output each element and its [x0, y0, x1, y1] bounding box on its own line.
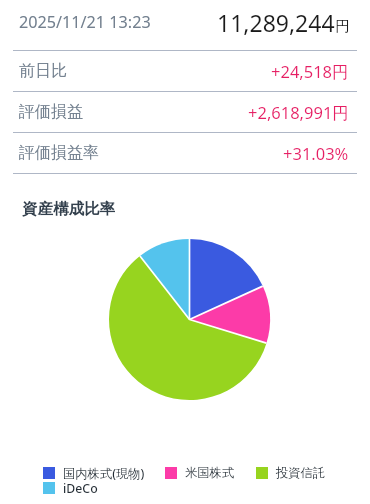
- staticText: +31.03%: [283, 142, 349, 164]
- button[interactable]: 評価損益: [0, 91, 370, 132]
- staticText: +2,618,991円: [248, 101, 349, 124]
- staticText: 評価損益: [19, 102, 83, 122]
- staticText: +24,518円: [271, 60, 349, 83]
- staticText: 前日比: [19, 61, 67, 81]
- staticText: 資産構成比率: [22, 199, 115, 219]
- staticText: 円: [335, 17, 350, 35]
- staticText: iDeCo: [63, 480, 98, 495]
- button[interactable]: 投資信託: [256, 465, 326, 480]
- button[interactable]: 前日比: [0, 50, 370, 91]
- staticText: 評価損益率: [19, 143, 99, 163]
- button[interactable]: iDeCo: [43, 480, 98, 495]
- staticText: 投資信託: [276, 465, 326, 480]
- staticText: 2025/11/21 13:23: [19, 11, 151, 33]
- staticText: 米国株式: [185, 465, 235, 480]
- button[interactable]: 米国株式: [165, 465, 235, 480]
- button[interactable]: 評価損益率: [0, 132, 370, 173]
- staticText: 11,289,244: [217, 7, 335, 38]
- staticText: 国内株式(現物): [63, 465, 145, 480]
- button[interactable]: 国内株式(現物): [43, 465, 145, 480]
